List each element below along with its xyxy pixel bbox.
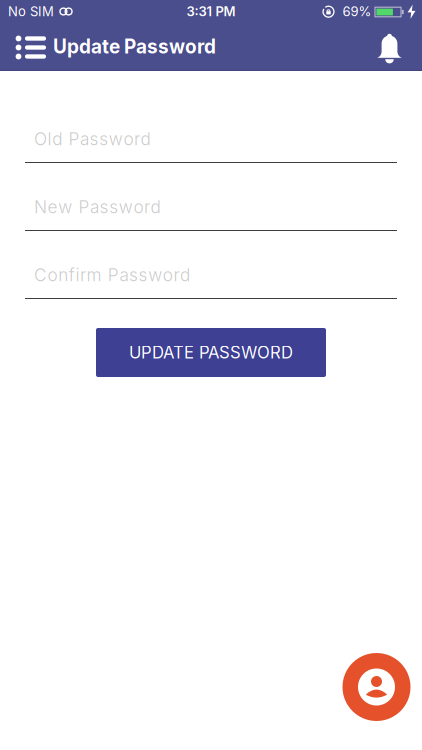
- staticText: Update Password: [53, 35, 216, 58]
- staticText: UPDATE PASSWORD: [129, 342, 293, 363]
- staticText: 3:31 PM: [186, 4, 235, 19]
- staticText: Old Password: [34, 129, 151, 149]
- staticText: New Password: [34, 197, 161, 217]
- staticText: Confirm Password: [34, 265, 190, 285]
- staticText: 69%: [342, 4, 371, 19]
- staticText: No SIM: [8, 4, 54, 19]
